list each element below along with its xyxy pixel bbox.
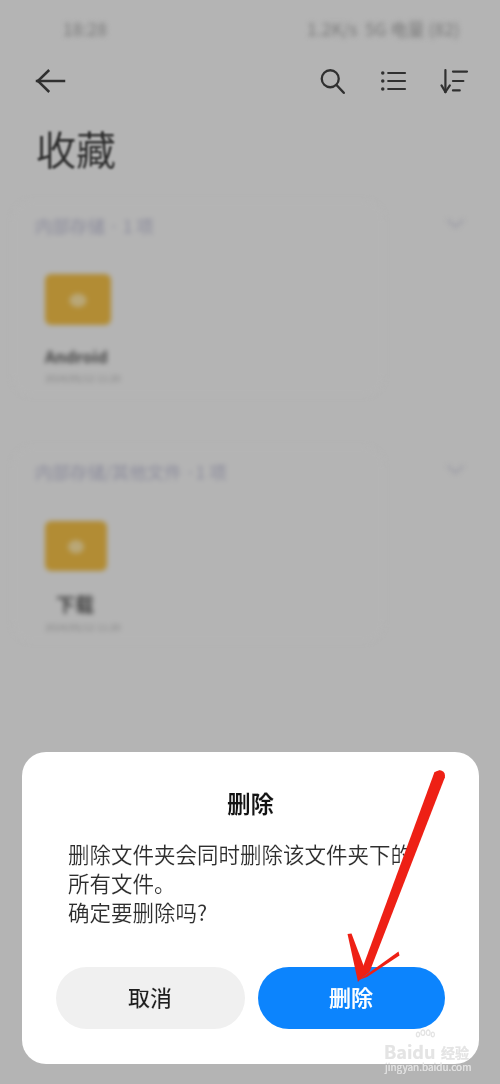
staticText: 内部存储 · 1 项	[35, 213, 154, 238]
staticText: 内部存储/其他文件 ·1 项	[35, 459, 227, 484]
button[interactable]: Back	[28, 59, 72, 103]
staticText: 2024/05/12 11:20	[45, 620, 121, 634]
staticText: 2024/05/12 11:20	[45, 371, 121, 385]
staticText: 1.2K/s 5G 电量 (82)	[307, 16, 460, 41]
staticText: 取消	[128, 980, 173, 1012]
button[interactable]: 内部存储 · 1 项	[12, 206, 472, 242]
button[interactable]: Sort	[432, 59, 476, 103]
staticText: jingyan.baidu.com	[385, 1059, 472, 1073]
staticText: 所有文件。	[68, 867, 176, 898]
button[interactable]: 删除	[258, 967, 445, 1029]
staticText: Android	[45, 344, 108, 367]
button[interactable]: Search	[310, 59, 354, 103]
staticText: 删除	[329, 980, 374, 1012]
staticText: 删除	[227, 786, 274, 820]
button[interactable]: 取消	[56, 967, 245, 1029]
staticText: 收藏	[36, 119, 116, 177]
staticText: 确定要删除吗?	[68, 896, 208, 927]
button[interactable]: 内部存储/其他文件 ·1 项	[12, 452, 472, 488]
staticText: 18:28	[63, 16, 107, 41]
staticText: 删除文件夹会同时删除该文件夹下的	[68, 838, 413, 869]
button[interactable]: List view	[371, 59, 415, 103]
staticText: 下载	[56, 590, 95, 618]
button[interactable]: Android	[45, 274, 175, 385]
button[interactable]: 下载	[45, 521, 175, 634]
staticText: Baidu	[384, 1038, 436, 1064]
staticText: 经验	[441, 1042, 469, 1062]
